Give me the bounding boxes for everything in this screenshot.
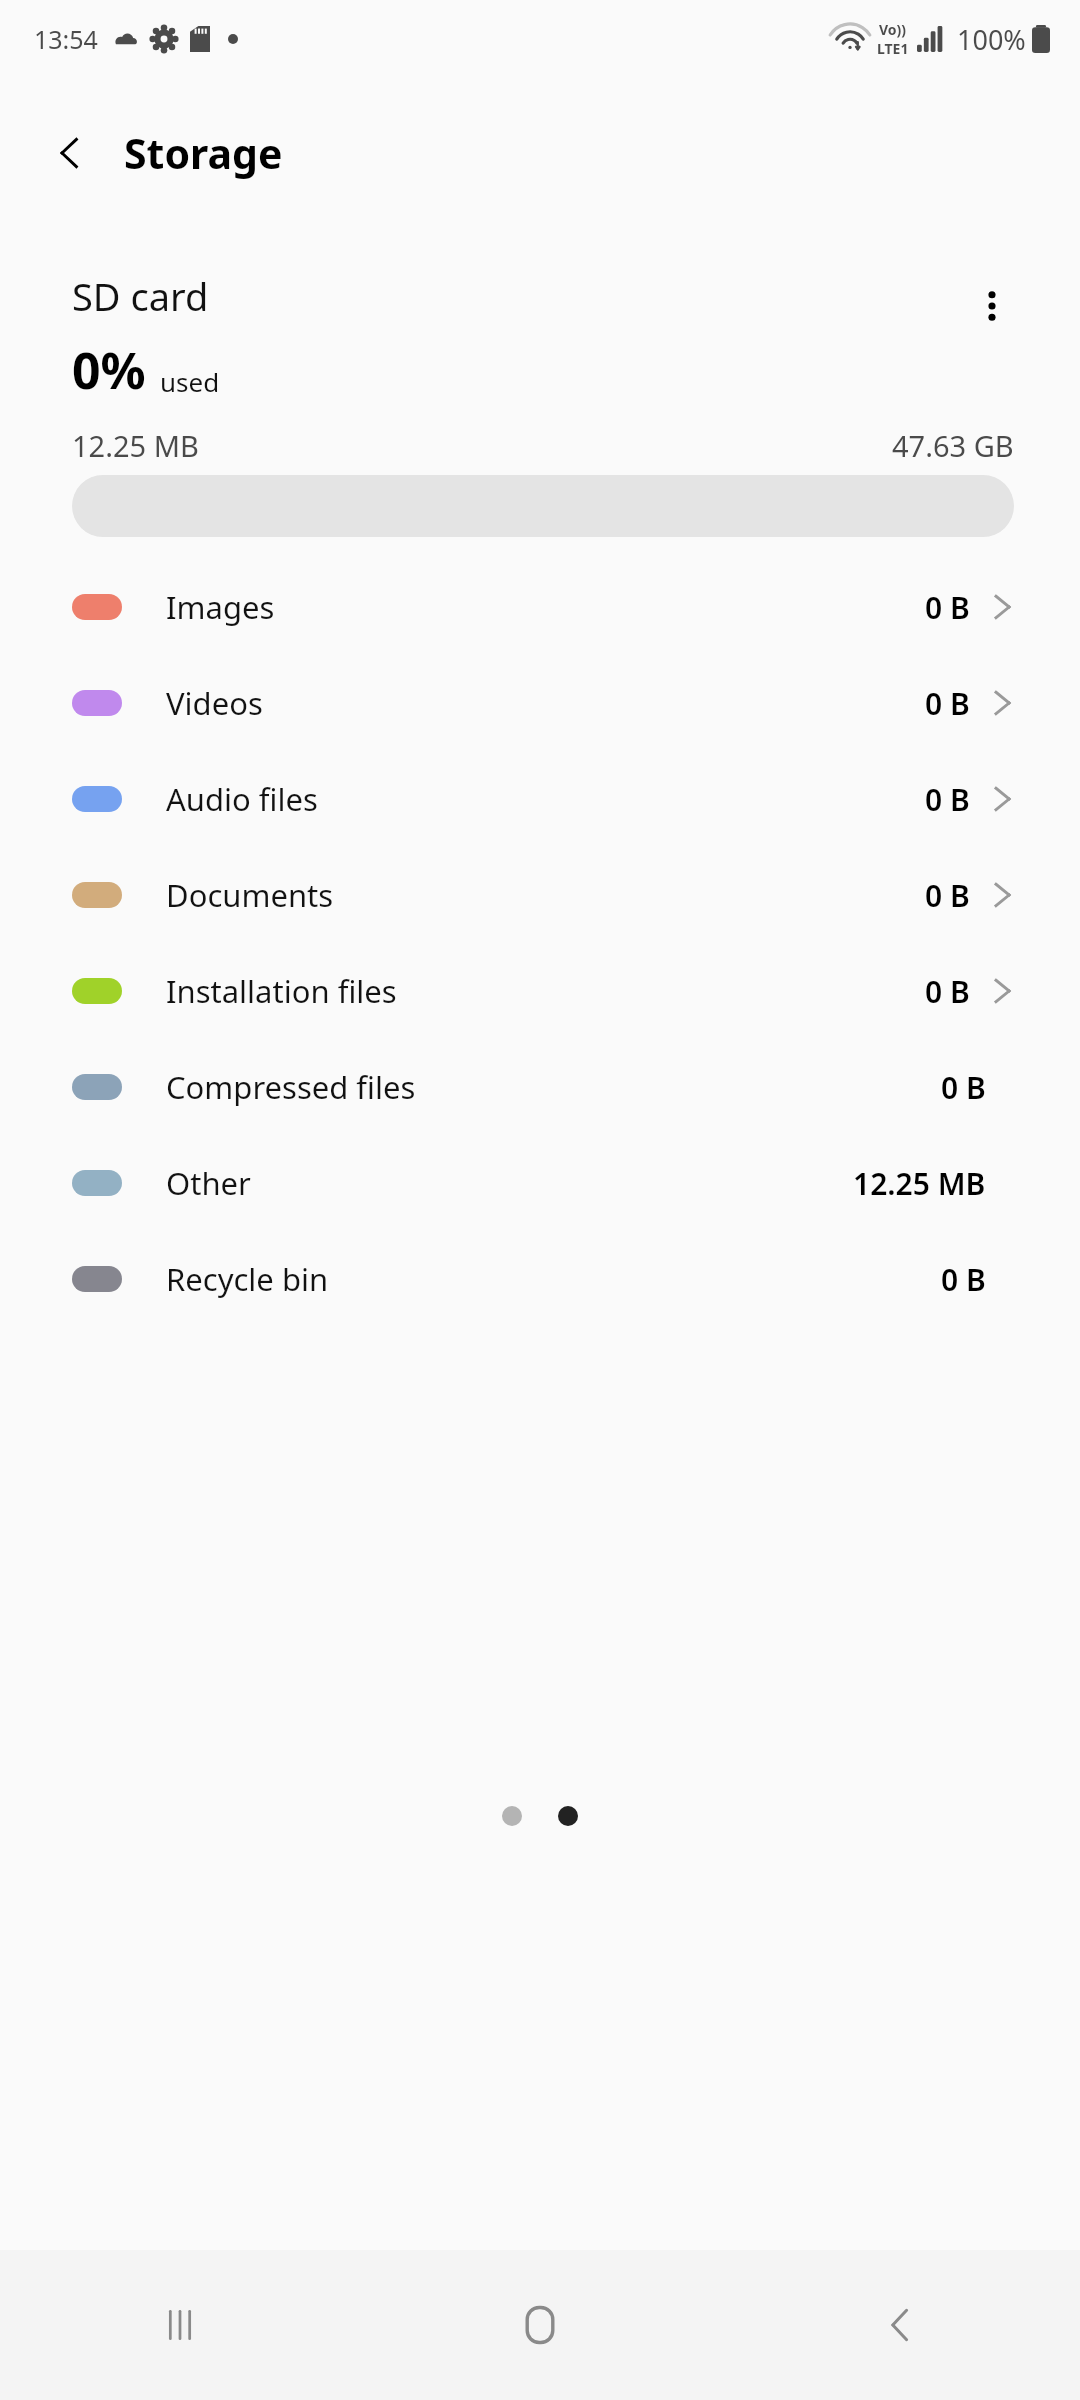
staticText: Storage — [124, 125, 283, 181]
button[interactable]: Compressed files — [0, 1039, 1080, 1135]
staticText: Recycle bin — [166, 1258, 329, 1300]
button[interactable]: Back — [30, 113, 110, 193]
staticText: 13:54 — [34, 22, 98, 56]
staticText: used — [160, 364, 220, 399]
staticText: Videos — [166, 682, 263, 724]
staticText: 12.25 MB — [72, 426, 199, 465]
staticText: 0 B — [941, 1259, 986, 1300]
staticText: Compressed files — [166, 1066, 416, 1108]
button[interactable]: More options — [956, 270, 1028, 342]
staticText: Vo)) — [879, 20, 907, 39]
button[interactable]: Images — [0, 559, 1080, 655]
staticText: 0 B — [925, 875, 970, 916]
staticText: 100% — [957, 21, 1026, 58]
staticText: Installation files — [166, 970, 397, 1012]
button[interactable]: Other — [0, 1135, 1080, 1231]
button[interactable]: Documents — [0, 847, 1080, 943]
staticText: SD card — [72, 270, 209, 322]
staticText: 0 B — [925, 971, 970, 1012]
button[interactable]: Recent apps — [0, 2250, 360, 2400]
staticText: 47.63 GB — [892, 426, 1014, 465]
button[interactable]: Installation files — [0, 943, 1080, 1039]
button[interactable]: Back — [720, 2250, 1080, 2400]
button[interactable]: Videos — [0, 655, 1080, 751]
button[interactable] — [558, 1806, 578, 1826]
button[interactable] — [502, 1806, 522, 1826]
staticText: 0% — [72, 336, 146, 404]
staticText: 0 B — [925, 683, 970, 724]
staticText: 0 B — [941, 1067, 986, 1108]
staticText: 12.25 MB — [853, 1163, 986, 1204]
staticText: Images — [166, 586, 275, 628]
button[interactable]: Audio files — [0, 751, 1080, 847]
staticText: Documents — [166, 874, 334, 916]
staticText: Other — [166, 1162, 251, 1204]
staticText: Audio files — [166, 778, 318, 820]
staticText: 0 B — [925, 587, 970, 628]
button[interactable]: Home — [360, 2250, 720, 2400]
staticText: LTE1 — [877, 39, 909, 58]
staticText: 0 B — [925, 779, 970, 820]
button[interactable]: Recycle bin — [0, 1231, 1080, 1327]
